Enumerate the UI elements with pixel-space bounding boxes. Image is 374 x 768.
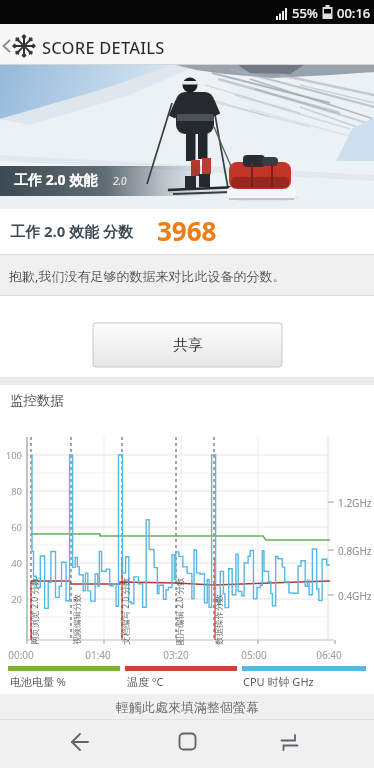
staticText: 0.8GHz xyxy=(338,544,372,558)
staticText: 电池电量 % xyxy=(10,674,67,689)
staticText: 工作 2.0 效能 分数 xyxy=(10,221,134,241)
button[interactable] xyxy=(0,24,44,65)
staticText: 2.0 xyxy=(113,174,127,188)
staticText: 3968 xyxy=(157,213,217,248)
staticText: 数据操作分数 xyxy=(214,594,225,645)
button[interactable] xyxy=(163,722,211,762)
staticText: 工作 2.0 效能 xyxy=(14,170,98,189)
staticText: 100 xyxy=(2,449,22,462)
staticText: 03:20 xyxy=(159,648,193,662)
staticText: 80 xyxy=(2,485,22,498)
button[interactable] xyxy=(269,722,317,762)
staticText: 00:00 xyxy=(4,648,38,662)
staticText: 20 xyxy=(2,593,22,606)
staticText: 60 xyxy=(2,521,22,534)
staticText: 共享 xyxy=(173,336,203,355)
staticText: 0.4GHz xyxy=(338,589,372,603)
staticText: SCORE DETAILS xyxy=(42,36,165,58)
staticText: 监控数据 xyxy=(10,392,64,409)
staticText: 55% xyxy=(292,4,318,22)
button[interactable]: 共享 xyxy=(93,323,282,367)
button[interactable]: 輕觸此處來填滿整個螢幕 xyxy=(0,694,374,720)
staticText: 00:16 xyxy=(337,4,371,22)
staticText: 文档编写 2.0 分数 xyxy=(120,577,132,645)
staticText: 輕觸此處來填滿整個螢幕 xyxy=(116,699,259,715)
staticText: 1.2GHz xyxy=(338,496,372,510)
staticText: 抱歉,我们没有足够的数据来对比此设备的分数。 xyxy=(9,267,286,285)
staticText: 01:40 xyxy=(81,648,115,662)
staticText: CPU 时钟 GHz xyxy=(243,674,314,689)
button[interactable] xyxy=(56,722,104,762)
staticText: 视频编辑分数 xyxy=(72,594,83,645)
staticText: 图片编辑 2.0 分数 xyxy=(174,577,186,645)
staticText: 05:00 xyxy=(237,648,271,662)
staticText: 温度 °C xyxy=(127,674,164,689)
staticText: 06:40 xyxy=(312,648,346,662)
staticText: 网页浏览 2.0 分数 xyxy=(29,577,41,645)
staticText: 40 xyxy=(2,557,22,570)
